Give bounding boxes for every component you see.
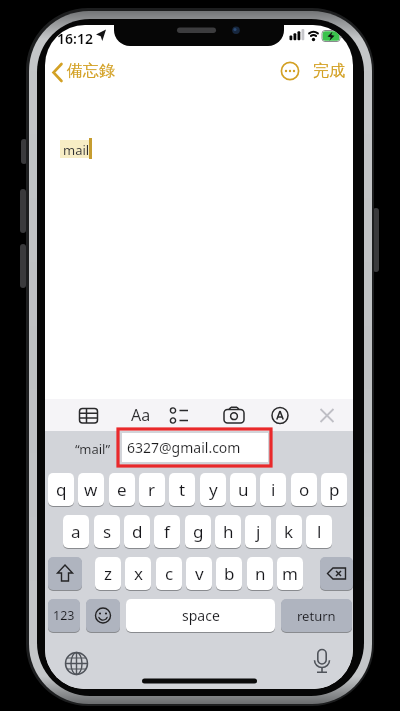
button[interactable]: y	[200, 473, 226, 506]
staticText: t	[179, 478, 186, 501]
staticText: v	[195, 562, 204, 585]
button[interactable]: g	[185, 515, 211, 548]
staticText: p	[329, 478, 340, 501]
button[interactable]: p	[321, 473, 347, 506]
button[interactable]: w	[78, 473, 104, 506]
staticText: i	[271, 478, 276, 501]
staticText: a	[71, 520, 81, 543]
button[interactable]: d	[124, 515, 150, 548]
staticText: m	[282, 562, 298, 585]
staticText: r	[148, 478, 156, 501]
button[interactable]	[86, 599, 120, 632]
button[interactable]: q	[48, 473, 74, 506]
button[interactable]: x	[125, 557, 151, 590]
button[interactable]: e	[109, 473, 135, 506]
button[interactable]: t	[169, 473, 195, 506]
staticText: g	[193, 520, 204, 543]
staticText: s	[103, 520, 112, 543]
staticText: o	[299, 478, 310, 501]
button[interactable]: f	[154, 515, 180, 548]
button[interactable]: s	[94, 515, 120, 548]
button[interactable]: v	[186, 557, 212, 590]
button[interactable]: 6327@gmail.com	[122, 433, 268, 462]
staticText: f	[164, 520, 170, 543]
button[interactable]: r	[139, 473, 165, 506]
staticText: Aa	[131, 404, 151, 426]
staticText: w	[84, 478, 98, 501]
staticText: k	[284, 520, 294, 543]
button[interactable]	[320, 557, 353, 590]
button[interactable]: 123	[48, 599, 80, 632]
staticText: “mail”	[75, 440, 111, 458]
staticText: 123	[53, 607, 75, 624]
button[interactable]: space	[126, 599, 275, 632]
button[interactable]: i	[260, 473, 286, 506]
staticText: 備忘錄	[67, 61, 115, 81]
staticText: b	[224, 562, 235, 585]
staticText: mail	[63, 141, 90, 159]
button[interactable]: return	[281, 599, 352, 632]
button[interactable]: 備忘錄	[49, 59, 157, 85]
staticText: n	[255, 562, 266, 585]
staticText: e	[117, 478, 127, 501]
staticText: h	[223, 520, 234, 543]
staticText: 完成	[313, 61, 345, 81]
button[interactable]: m	[277, 557, 303, 590]
button[interactable]: Aa	[127, 403, 155, 427]
staticText: y	[209, 478, 218, 501]
button[interactable]: b	[216, 557, 242, 590]
button[interactable]: o	[291, 473, 317, 506]
button[interactable]: a	[63, 515, 89, 548]
staticText: l	[317, 520, 322, 543]
staticText: c	[165, 562, 174, 585]
staticText: z	[104, 562, 112, 585]
staticText: space	[182, 606, 220, 625]
staticText: 6327@gmail.com	[127, 438, 241, 457]
button[interactable]: z	[95, 557, 121, 590]
button[interactable]: 完成	[309, 59, 345, 85]
staticText: 16:12	[57, 29, 93, 48]
button[interactable]: n	[247, 557, 273, 590]
staticText: u	[238, 478, 249, 501]
button[interactable]: “mail”	[67, 435, 119, 463]
button[interactable]: j	[245, 515, 271, 548]
staticText: x	[134, 562, 143, 585]
staticText: j	[256, 520, 261, 543]
staticText: d	[132, 520, 143, 543]
button[interactable]: k	[276, 515, 302, 548]
button[interactable]: c	[156, 557, 182, 590]
staticText: return	[297, 607, 336, 625]
staticText: q	[56, 478, 67, 501]
button[interactable]	[48, 557, 82, 590]
button[interactable]: h	[215, 515, 241, 548]
button[interactable]: l	[306, 515, 332, 548]
button[interactable]: u	[230, 473, 256, 506]
